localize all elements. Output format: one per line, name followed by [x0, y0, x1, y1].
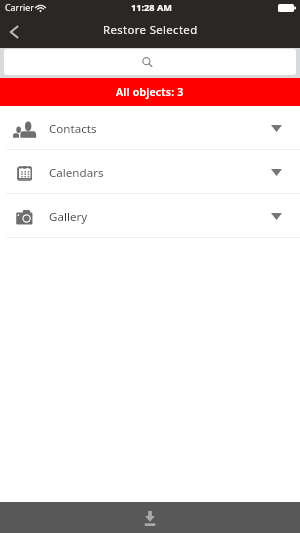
button[interactable]: Calendars — [0, 150, 300, 194]
staticText: Restore Selected — [103, 22, 198, 38]
staticText: Calendars — [49, 165, 104, 181]
button[interactable]: Gallery — [0, 194, 300, 238]
button[interactable]: Contacts — [0, 106, 300, 150]
staticText: Carrier — [5, 1, 34, 13]
staticText: Contacts — [49, 121, 97, 137]
staticText: Gallery — [49, 209, 88, 225]
button[interactable]: Back — [0, 20, 34, 48]
staticText: All objects: 3 — [116, 85, 184, 99]
button[interactable] — [4, 49, 296, 75]
button[interactable]: Download — [120, 502, 180, 533]
staticText: 11:28 AM — [131, 1, 173, 14]
